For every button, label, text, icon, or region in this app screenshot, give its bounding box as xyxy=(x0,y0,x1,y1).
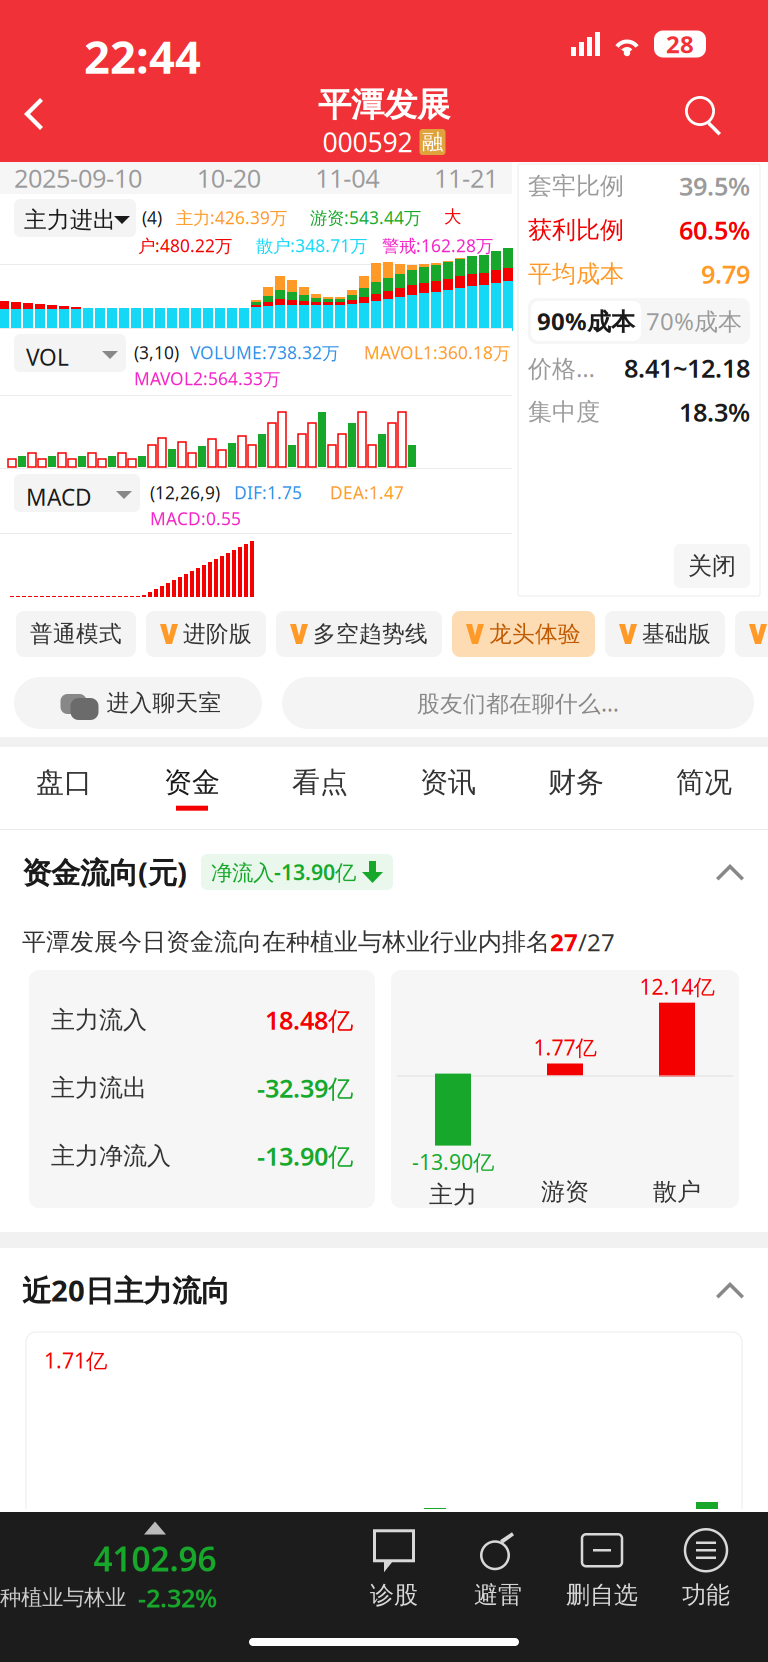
staticText: 功能 xyxy=(682,1580,730,1610)
staticText: 11-04 xyxy=(315,161,379,195)
staticText: 盘口 xyxy=(36,765,92,800)
staticText: 主力 xyxy=(429,1180,477,1209)
button[interactable]: 删自选 xyxy=(550,1514,654,1622)
button[interactable]: 主力进出 xyxy=(14,199,136,237)
staticText: 游资 xyxy=(541,1177,589,1206)
staticText: 游资:543.44万 xyxy=(310,206,421,229)
staticText: 看点 xyxy=(292,765,348,800)
staticText: 1.77亿 xyxy=(533,1033,596,1061)
button[interactable]: 简况 xyxy=(640,747,768,829)
staticText: VOLUME:738.32万 xyxy=(190,341,339,364)
button[interactable]: 基础版 xyxy=(605,611,725,657)
staticText: 主力净流入 xyxy=(51,1141,171,1171)
staticText: 27 xyxy=(550,926,578,958)
staticText: 财务 xyxy=(548,765,604,800)
staticText: 价格… xyxy=(528,352,595,384)
button[interactable]: 功能 xyxy=(654,1514,758,1622)
staticText: -13.90亿 xyxy=(257,1139,353,1173)
staticText: 删自选 xyxy=(566,1580,638,1610)
staticText: 基础版 xyxy=(642,620,711,648)
staticText: DEA:1.47 xyxy=(330,481,404,504)
button[interactable]: 看点 xyxy=(256,747,384,829)
staticText: 套牢比例 xyxy=(528,171,624,201)
staticText: 普通模式 xyxy=(30,620,122,648)
button[interactable]: Collapse xyxy=(714,860,746,884)
staticText: 4102.96 xyxy=(93,1536,216,1581)
staticText: 警戒:162.28万 xyxy=(382,234,493,257)
staticText: 1.71亿 xyxy=(44,1346,107,1374)
staticText: MAVOL1:360.18万 xyxy=(364,341,510,364)
staticText: 资金流向(元) xyxy=(22,852,187,891)
staticText: 9.79 xyxy=(701,257,750,291)
button[interactable]: 关闭 xyxy=(674,544,750,588)
staticText: -32.39亿 xyxy=(257,1071,353,1105)
staticText: MAVOL2:564.33万 xyxy=(134,367,280,390)
staticText: 10-20 xyxy=(197,161,261,195)
button[interactable]: VOL xyxy=(14,334,126,372)
button[interactable]: Search xyxy=(676,88,732,144)
staticText: 18.48亿 xyxy=(265,1003,353,1037)
staticText: 2025-09-10 xyxy=(14,161,142,195)
button[interactable]: 进阶版 xyxy=(146,611,266,657)
staticText: 主力流出 xyxy=(51,1073,147,1103)
staticText: 8.41~12.18 xyxy=(624,351,750,385)
button[interactable]: 盘口 xyxy=(0,747,128,829)
staticText: 60.5% xyxy=(679,213,750,247)
staticText: 12.14亿 xyxy=(639,972,714,1001)
staticText: 种植业与林业 xyxy=(0,1584,126,1611)
staticText: 平潭发展 xyxy=(318,84,450,125)
staticText: 股友们都在聊什么… xyxy=(417,688,619,718)
button[interactable]: 龙 xyxy=(735,611,768,657)
button[interactable]: 资讯 xyxy=(384,747,512,829)
button[interactable]: 70%成本 xyxy=(641,298,747,344)
staticText: 净流入-13.90亿 xyxy=(211,858,356,886)
staticText: 多空趋势线 xyxy=(313,620,428,648)
staticText: 户:480.22万 xyxy=(138,234,232,257)
staticText: (3,10) xyxy=(134,341,179,364)
staticText: 诊股 xyxy=(370,1580,418,1610)
staticText: MACD xyxy=(26,482,92,512)
staticText: 大 xyxy=(444,206,461,227)
button[interactable]: Back xyxy=(18,88,74,144)
button[interactable]: 进入聊天室 xyxy=(14,677,262,729)
button[interactable]: Collapse xyxy=(714,1278,746,1302)
staticText: 90%成本 xyxy=(537,305,635,337)
staticText: 22:44 xyxy=(84,26,201,86)
button[interactable]: 诊股 xyxy=(342,1514,446,1622)
staticText: 资金 xyxy=(164,765,220,800)
staticText: VOL xyxy=(26,342,69,372)
staticText: (4) xyxy=(142,206,162,229)
staticText: 平潭发展今日资金流向在种植业与林业行业内排名 xyxy=(22,927,550,957)
staticText: 集中度 xyxy=(528,397,600,427)
staticText: 进阶版 xyxy=(183,620,252,648)
staticText: 散户 xyxy=(653,1177,701,1206)
button[interactable]: 龙头体验 xyxy=(452,611,595,657)
button[interactable]: 资金 xyxy=(128,747,256,829)
staticText: 融 xyxy=(422,129,443,155)
button[interactable]: 90%成本 xyxy=(531,298,641,344)
staticText: 70%成本 xyxy=(646,305,742,337)
staticText: 避雷 xyxy=(474,1580,522,1610)
staticText: 18.3% xyxy=(679,395,750,429)
button[interactable]: 股友们都在聊什么… xyxy=(282,677,754,729)
staticText: 近20日主力流向 xyxy=(22,1270,230,1309)
staticText: 主力进出 xyxy=(24,206,116,234)
button[interactable]: 避雷 xyxy=(446,1514,550,1622)
button[interactable]: MACD xyxy=(14,474,140,512)
staticText: 39.5% xyxy=(679,169,750,203)
staticText: 主力流入 xyxy=(51,1005,147,1035)
staticText: 平均成本 xyxy=(528,259,624,289)
button[interactable]: 多空趋势线 xyxy=(276,611,442,657)
button[interactable]: 财务 xyxy=(512,747,640,829)
staticText: 11-21 xyxy=(434,161,498,195)
staticText: 获利比例 xyxy=(528,215,624,245)
staticText: -2.32% xyxy=(138,1581,217,1614)
staticText: 000592 xyxy=(322,124,412,160)
staticText: 资讯 xyxy=(420,765,476,800)
staticText: 进入聊天室 xyxy=(106,689,221,717)
button[interactable]: 普通模式 xyxy=(16,611,136,657)
staticText: /27 xyxy=(578,926,615,958)
staticText: 龙头体验 xyxy=(489,620,581,648)
staticText: 散户:348.71万 xyxy=(256,234,367,257)
staticText: 简况 xyxy=(676,765,732,800)
